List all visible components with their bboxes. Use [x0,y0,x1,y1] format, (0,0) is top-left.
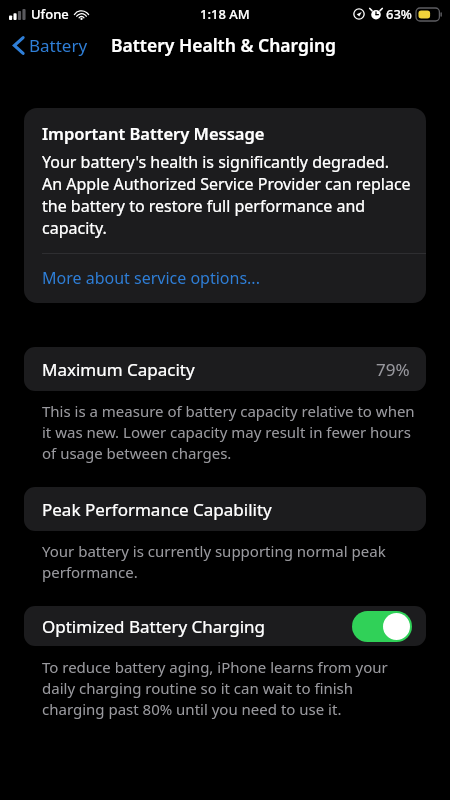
staticText: Peak Performance Capability [42,498,272,521]
staticText: 63% [386,5,412,23]
button[interactable]: Optimized Battery Charging [24,606,426,646]
button[interactable]: Maximum Capacity [24,347,426,391]
staticText: This is a measure of battery capacity re… [42,401,416,464]
staticText: More about service options... [42,267,260,289]
button[interactable]: More about service options... [24,254,426,303]
button[interactable]: Optimized Battery Charging toggle, on [352,611,412,642]
staticText: Your battery is currently supporting nor… [42,541,416,583]
staticText: Optimized Battery Charging [42,615,265,638]
button[interactable]: Peak Performance Capability [24,487,426,531]
staticText: To reduce battery aging, iPhone learns f… [42,657,416,720]
staticText: Battery Health & Charging [111,33,336,57]
staticText: Ufone [31,5,69,23]
staticText: 79% [376,358,410,381]
staticText: Important Battery Message [42,122,265,144]
staticText: Battery [29,34,88,57]
staticText: Your battery's health is significantly d… [42,151,412,239]
staticText: Maximum Capacity [42,358,195,381]
button[interactable]: Battery [0,31,94,60]
staticText: 1:18 AM [200,5,250,23]
